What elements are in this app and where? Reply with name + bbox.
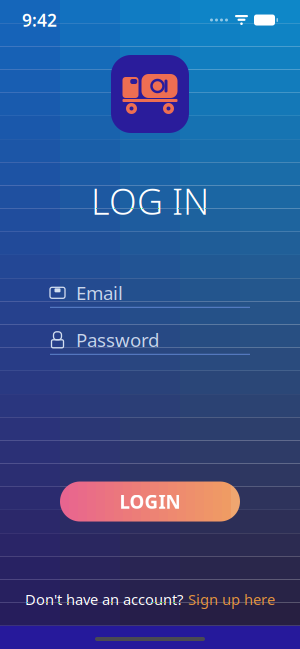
staticText: Email [76,280,123,305]
staticText: 9:42 [22,8,57,31]
staticText: LOGIN [119,489,180,514]
button[interactable]: LOGIN [60,481,240,521]
staticText: Password [76,327,159,352]
button[interactable]: Don't have an account? [15,583,285,615]
staticText: LOG IN [91,177,209,225]
staticText: Sign up here [188,589,275,609]
staticText: Don't have an account? [25,589,183,609]
